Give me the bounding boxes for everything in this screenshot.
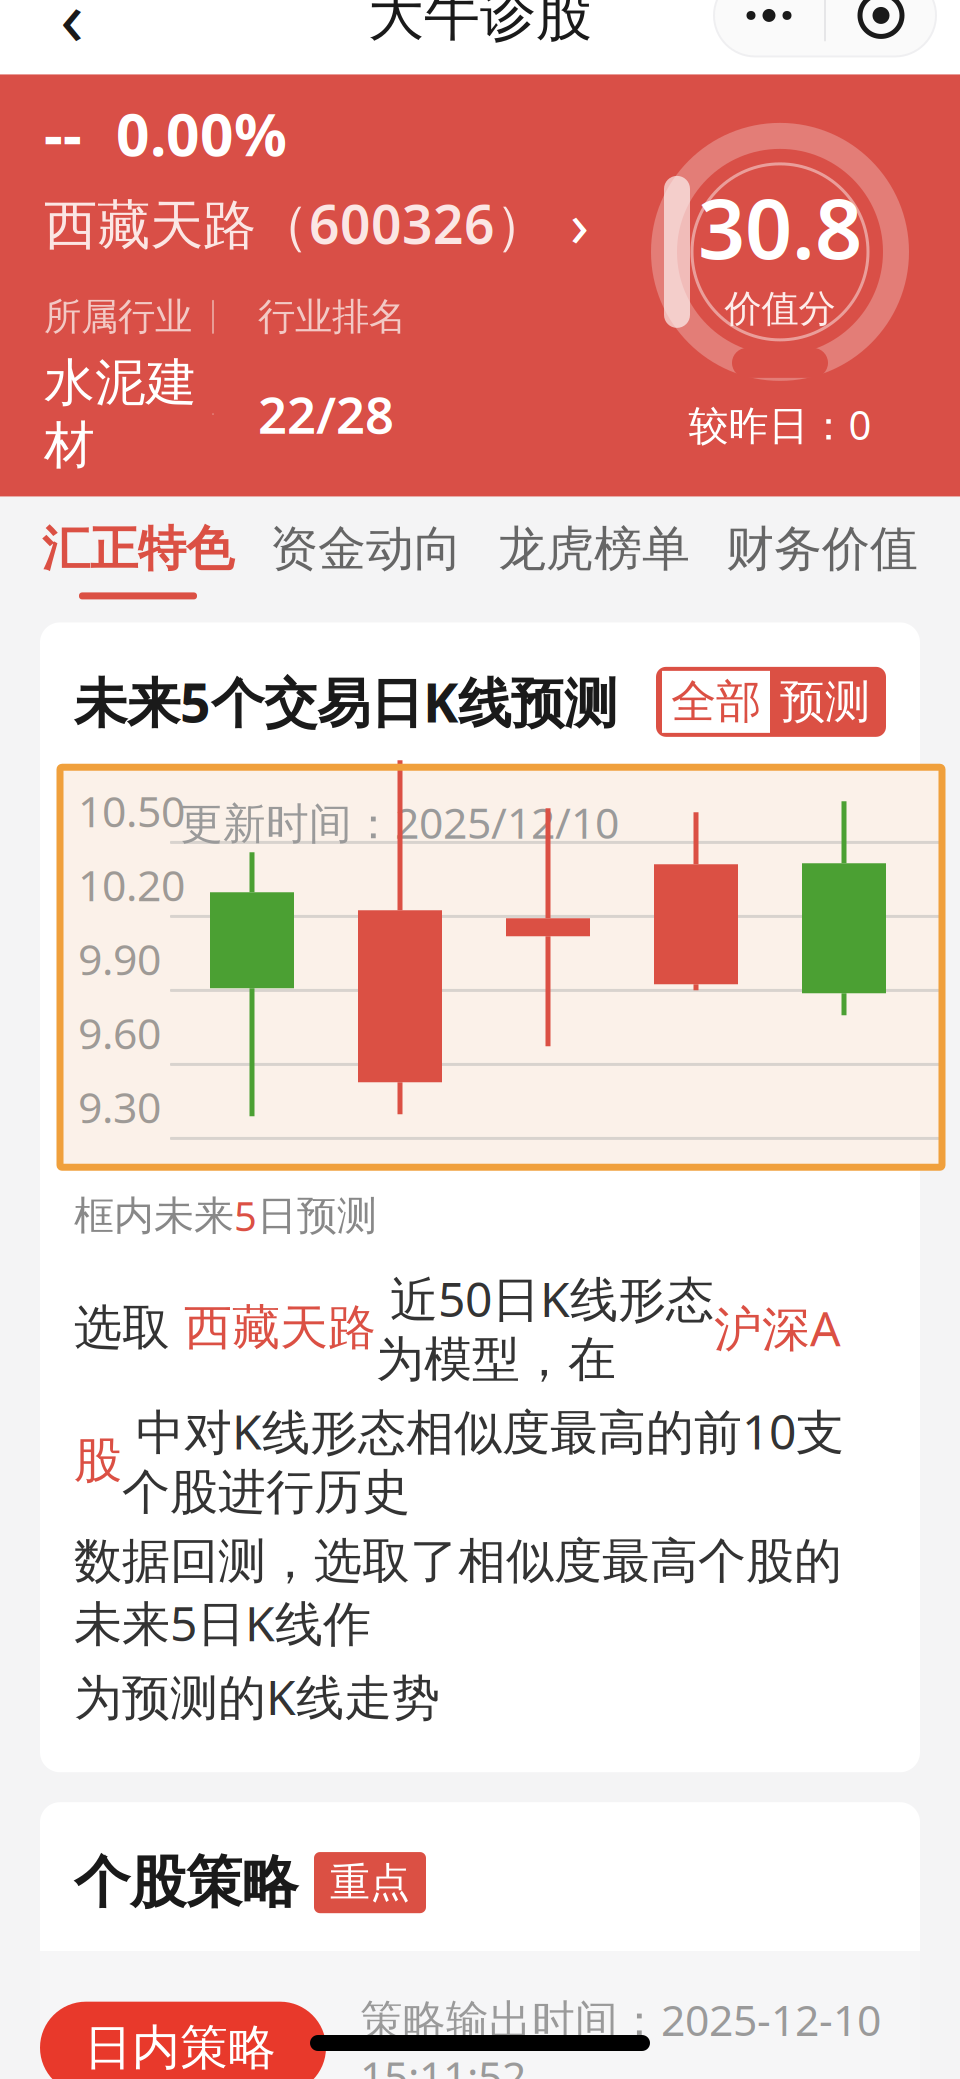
button[interactable]: More: [714, 0, 824, 56]
staticText: 沪深A: [714, 1296, 841, 1360]
button[interactable]: 汇正特色: [24, 496, 252, 622]
staticText: 10.50: [78, 782, 185, 839]
staticText: 较昨日：0: [688, 398, 871, 451]
button[interactable]: 资金动向: [252, 496, 480, 622]
staticText: 近50日K线形态为模型，在: [376, 1266, 714, 1389]
staticText: 大牛诊股: [368, 0, 592, 50]
staticText: 西藏天路: [184, 1298, 376, 1357]
staticText: --: [44, 95, 82, 172]
button[interactable]: 全部: [662, 671, 770, 733]
staticText: 数据回测，选取了相似度最高个股的未来5日K线作: [74, 1532, 842, 1654]
staticText: 价值分: [724, 286, 835, 332]
staticText: 30.8: [698, 172, 862, 282]
staticText: 策略输出时间：2025-12-10 15:11:52: [360, 1991, 881, 2079]
staticText: 9.60: [78, 1004, 161, 1061]
staticText: 汇正特色: [42, 519, 234, 578]
staticText: 西藏天路（600326）: [44, 188, 548, 259]
staticText: ‹: [60, 0, 84, 67]
staticText: 全部: [671, 674, 761, 730]
button[interactable]: 龙虎榜单: [480, 496, 708, 622]
staticText: 重点: [330, 1858, 410, 1907]
staticText: 日预测: [257, 1191, 377, 1240]
staticText: 预测: [780, 674, 870, 730]
staticText: 水泥建材: [44, 352, 197, 476]
button[interactable]: Back: [24, 0, 120, 63]
staticText: 22/28: [258, 380, 394, 448]
staticText: 个股策略: [74, 1848, 298, 1917]
staticText: 框内未来: [74, 1191, 234, 1240]
staticText: 所属行业: [44, 294, 192, 340]
staticText: 行业排名: [258, 294, 406, 340]
staticText: 9.30: [78, 1078, 161, 1135]
staticText: 资金动向: [270, 519, 462, 578]
staticText: 9.90: [78, 930, 161, 987]
staticText: 龙虎榜单: [498, 519, 690, 578]
staticText: ›: [570, 182, 589, 264]
button[interactable]: --: [44, 95, 589, 476]
staticText: 0.00%: [116, 95, 287, 172]
staticText: 未来5个交易日K线预测: [74, 666, 617, 737]
staticText: 更新时间：2025/12/10: [180, 794, 619, 851]
button[interactable]: Close mini program: [826, 0, 936, 56]
staticText: 中对K线形态相似度最高的前10支个股进行历史: [122, 1399, 844, 1522]
staticText: 财务价值: [726, 519, 918, 578]
staticText: 为预测的K线走势: [74, 1664, 440, 1728]
staticText: 10.20: [78, 856, 185, 913]
staticText: 选取: [74, 1298, 184, 1357]
staticText: 5: [234, 1189, 257, 1242]
button[interactable]: 财务价值: [708, 496, 936, 622]
staticText: 股: [74, 1431, 122, 1490]
staticText: 日内策略: [84, 2018, 276, 2077]
button[interactable]: 预测: [770, 667, 880, 737]
